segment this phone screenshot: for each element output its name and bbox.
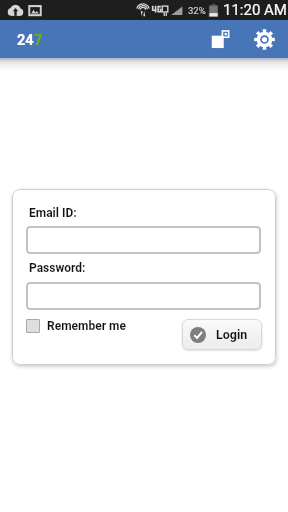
- staticText: Remember me: [47, 319, 126, 333]
- button[interactable]: Switch view: [202, 21, 238, 57]
- button[interactable]: Remember me: [26, 319, 126, 333]
- staticText: Password:: [29, 261, 86, 275]
- button[interactable]: Login: [182, 319, 262, 350]
- staticText: 7: [34, 32, 43, 49]
- button[interactable]: [26, 282, 261, 310]
- staticText: Login: [216, 327, 248, 342]
- button[interactable]: Settings: [246, 21, 282, 57]
- button[interactable]: [26, 226, 261, 254]
- staticText: 32%: [188, 5, 206, 16]
- staticText: Email ID:: [29, 206, 77, 220]
- staticText: 24: [17, 32, 34, 49]
- staticText: 11:20 AM: [223, 1, 287, 19]
